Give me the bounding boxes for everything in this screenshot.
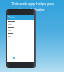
staticText: This web app helps you: [11, 1, 54, 6]
other: App bar: [7, 15, 34, 20]
button[interactable]: App bar: [6, 9, 36, 68]
staticText: to work faster: [19, 7, 45, 12]
